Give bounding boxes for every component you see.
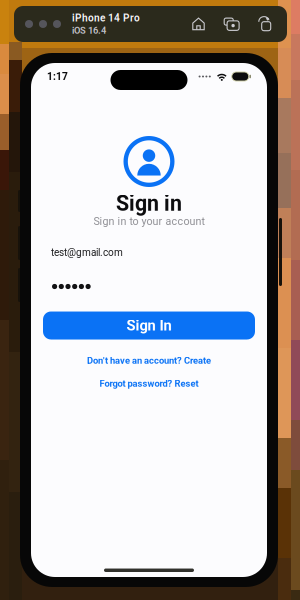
staticText: Forgot password? Reset [99,378,198,389]
staticText: test@gmail.com [51,247,123,258]
button[interactable]: Home [192,17,205,30]
staticText: iPhone 14 Pro [72,12,140,24]
button[interactable]: Forgot password? Reset [99,376,198,390]
staticText: Sign In [126,317,171,334]
button[interactable]: Don't have an account? Create [87,353,211,367]
button[interactable]: Screenshot [224,17,239,31]
staticText: iOS 16.4 [72,25,106,36]
staticText: Sign in to your account [93,215,204,227]
staticText: 1:17 [47,71,68,82]
staticText: Sign in [116,191,182,216]
button[interactable]: Rotate [258,17,272,31]
staticText: Don't have an account? Create [87,355,211,366]
button[interactable]: Sign In [43,311,255,339]
